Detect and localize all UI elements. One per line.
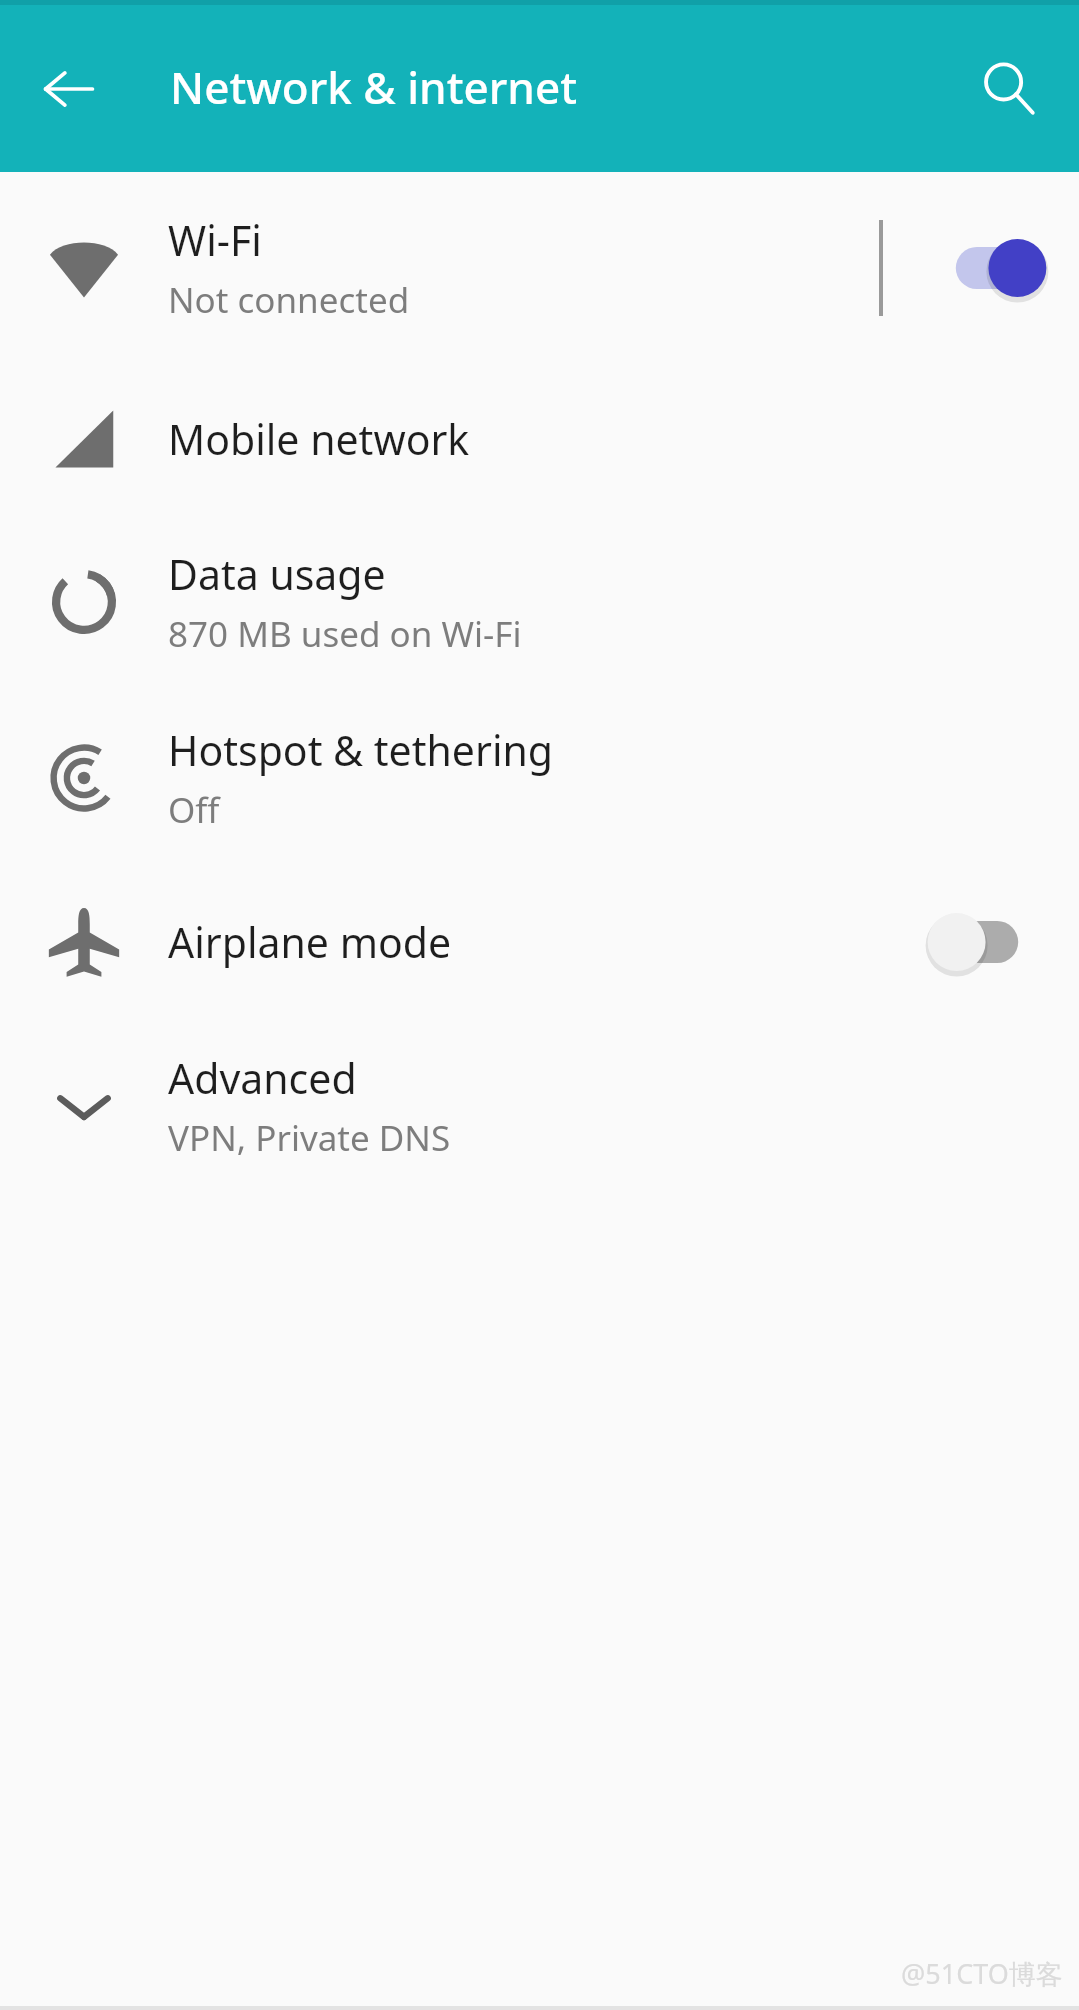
button[interactable]: Hotspot & tethering (0, 690, 1079, 866)
staticText: Hotspot & tethering (168, 722, 554, 778)
button[interactable]: Back (24, 45, 112, 133)
button[interactable]: Airplane mode (0, 866, 1079, 1018)
staticText: Advanced (168, 1050, 357, 1106)
staticText: Mobile network (168, 411, 470, 467)
staticText: @51CTO博客 (901, 1955, 1063, 1992)
staticText: Not connected (168, 276, 410, 324)
button[interactable]: Mobile network (0, 364, 1079, 514)
button[interactable]: Airplane mode off (923, 900, 1035, 984)
staticText: Data usage (168, 546, 386, 602)
button[interactable]: Wi-Fi on (939, 226, 1051, 310)
staticText: 870 MB used on Wi-Fi (168, 610, 522, 658)
staticText: Airplane mode (168, 914, 452, 970)
button[interactable]: Advanced (0, 1018, 1079, 1194)
button[interactable]: Wi-Fi (0, 172, 1079, 364)
button[interactable]: Search (961, 41, 1057, 137)
staticText: Off (168, 786, 220, 834)
staticText: Wi-Fi (168, 212, 262, 268)
button[interactable]: Data usage (0, 514, 1079, 690)
staticText: Network & internet (170, 57, 578, 117)
staticText: VPN, Private DNS (168, 1114, 451, 1162)
